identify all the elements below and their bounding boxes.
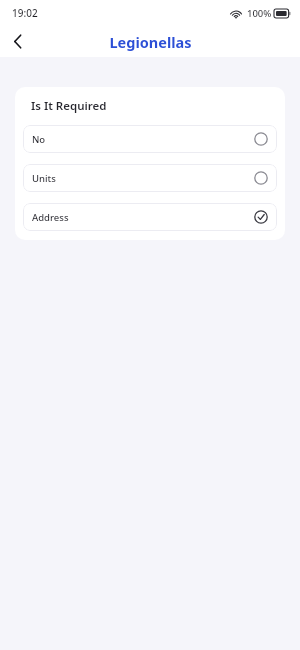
button[interactable]: Address [23, 203, 277, 231]
staticText: Is It Required [31, 98, 107, 114]
staticText: 19:02 [12, 6, 38, 20]
button[interactable]: Back [0, 26, 34, 57]
button[interactable]: Units [23, 164, 277, 192]
button[interactable]: No [23, 125, 277, 153]
staticText: Legionellas [109, 32, 192, 52]
staticText: 100% [247, 7, 272, 20]
staticText: Address [32, 211, 69, 224]
staticText: Units [32, 172, 56, 185]
staticText: No [32, 133, 46, 146]
